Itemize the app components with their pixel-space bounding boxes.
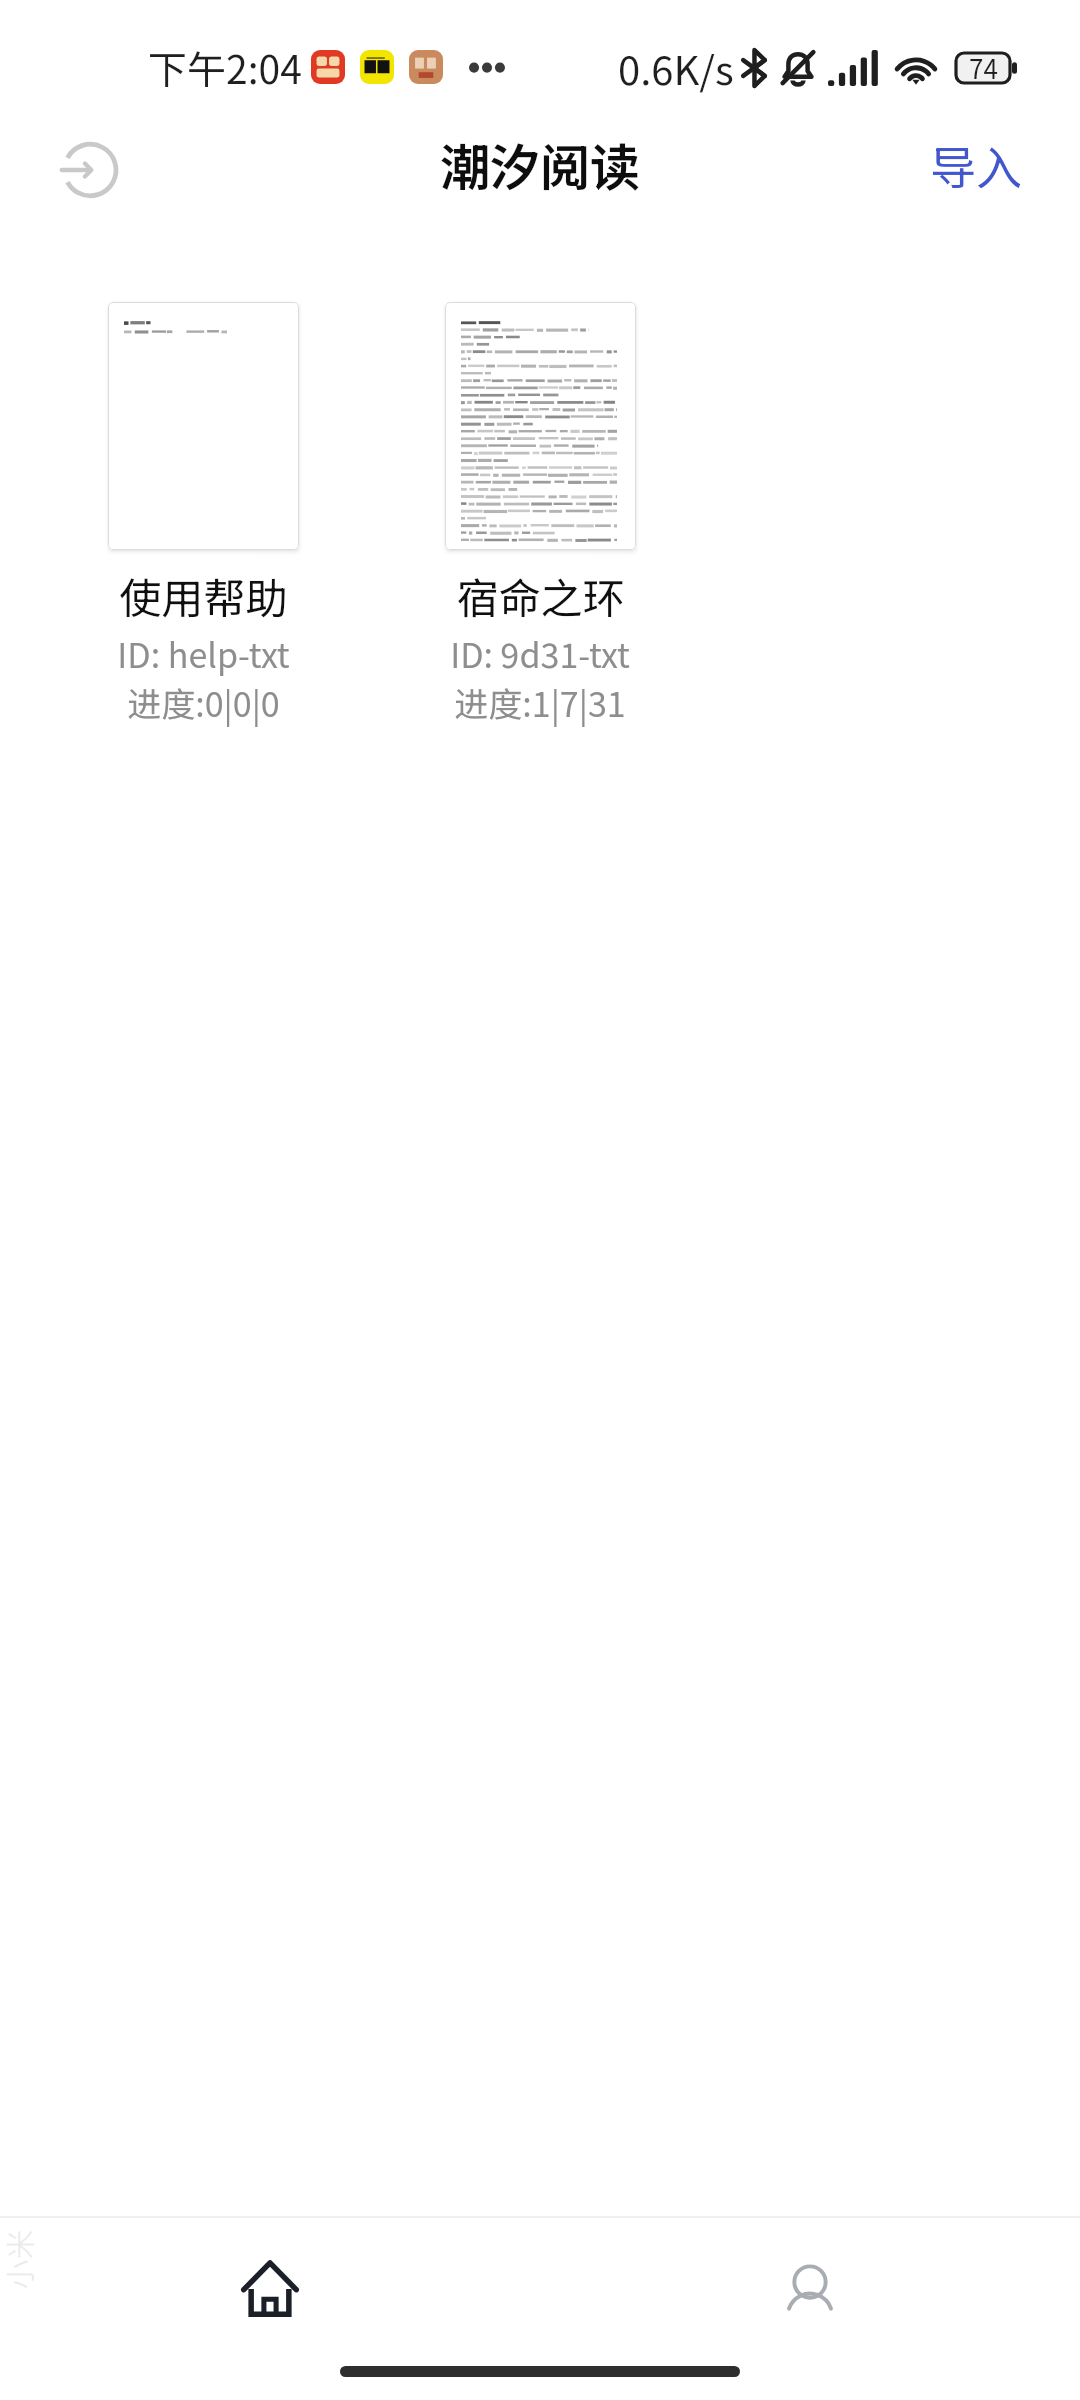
staticText: 宿命之环: [456, 565, 625, 626]
staticText: ID: 9d31-txt: [450, 629, 630, 678]
staticText: 导入: [930, 132, 1022, 199]
staticText: 0.6K/s: [618, 39, 734, 97]
button[interactable]: 导入: [910, 118, 1042, 213]
staticText: 小米: [0, 2229, 39, 2289]
staticText: 下午2:04: [148, 39, 302, 95]
button[interactable]: Profile: [720, 2226, 900, 2366]
button[interactable]: 宿命之环: [372, 302, 708, 727]
staticText: 74: [969, 49, 998, 87]
button[interactable]: Login: [40, 122, 136, 218]
staticText: 进度:0|0|0: [127, 678, 280, 727]
staticText: 进度:1|7|31: [454, 678, 626, 727]
button[interactable]: 使用帮助: [35, 302, 372, 727]
button[interactable]: Home: [180, 2218, 360, 2358]
staticText: ID: help-txt: [117, 629, 290, 678]
staticText: 潮汐阅读: [440, 128, 640, 200]
staticText: 使用帮助: [119, 565, 288, 626]
